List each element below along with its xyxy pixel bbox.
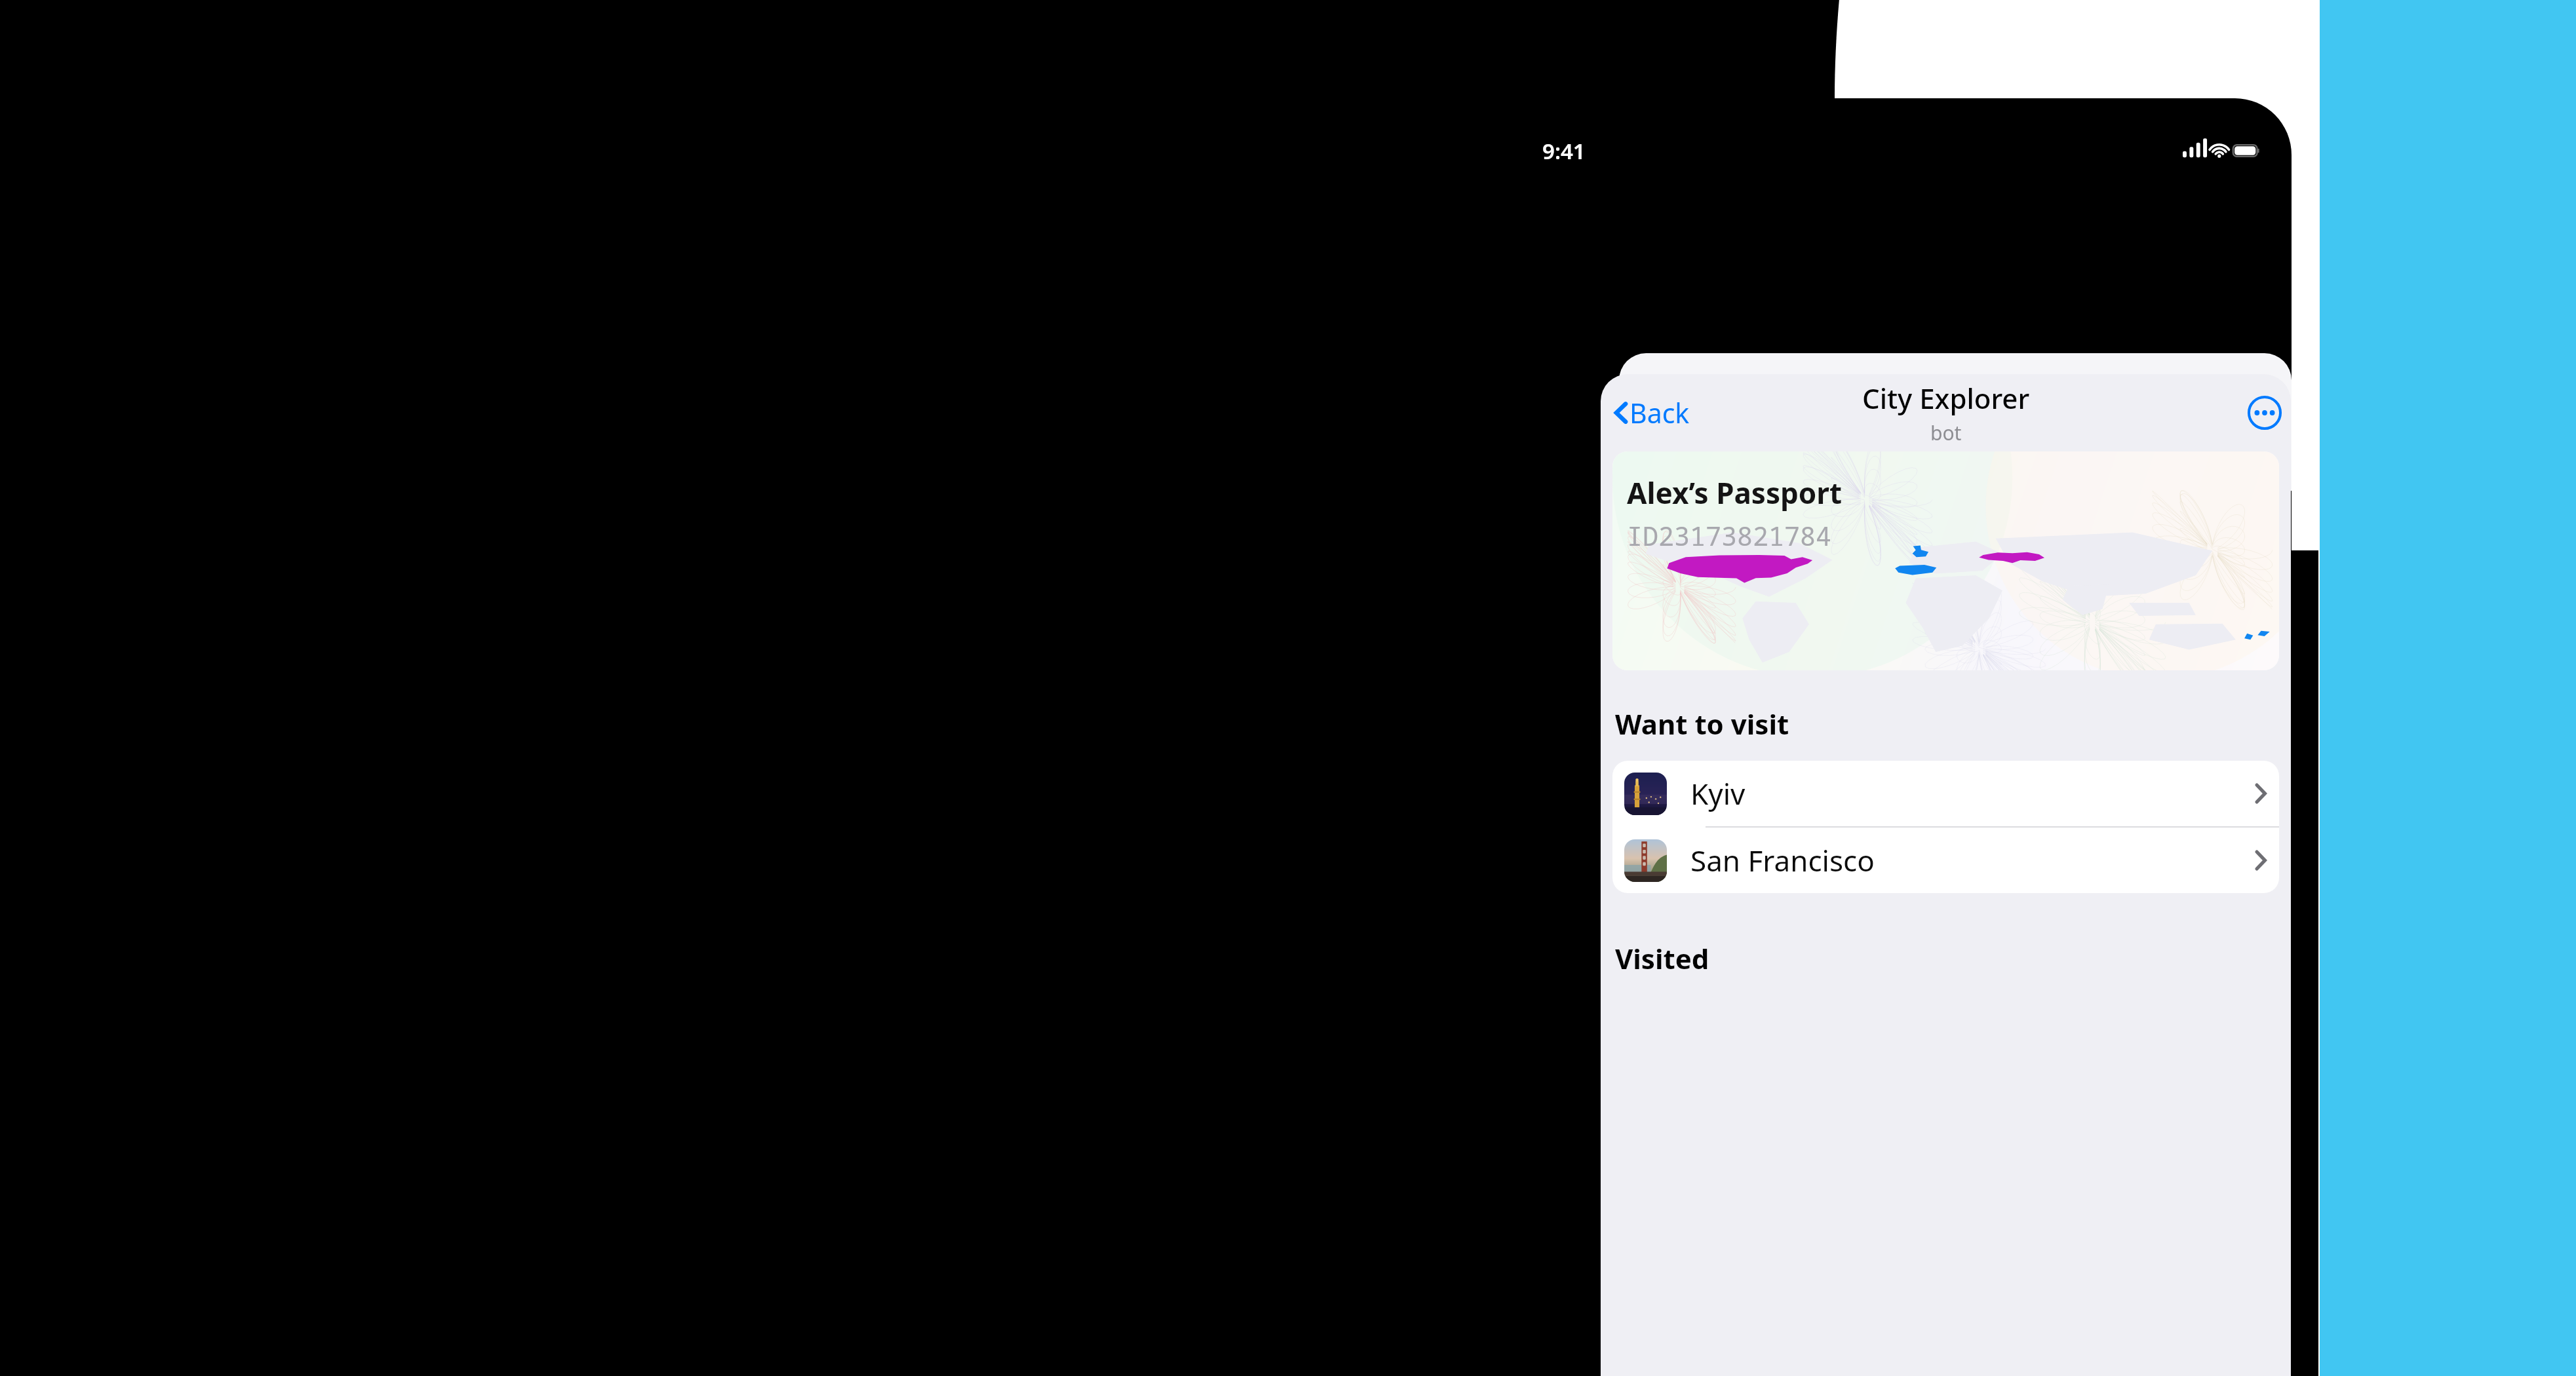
staticText: Back <box>1630 394 1690 431</box>
staticText: ID23173821784 <box>1627 518 1831 553</box>
button[interactable]: Kyiv <box>1612 761 2279 826</box>
staticText: Visited <box>1615 940 1709 977</box>
staticText: Alex’s Passport <box>1627 473 1843 512</box>
button[interactable]: San Francisco <box>1612 828 2279 893</box>
staticText: City Explorer <box>1862 379 2030 417</box>
button[interactable]: More options <box>2247 395 2282 430</box>
staticText: Want to visit <box>1615 705 1789 742</box>
staticText: bot <box>1930 419 1962 446</box>
button[interactable]: Alex’s Passport <box>1612 451 2279 670</box>
button[interactable]: Back <box>1610 389 1694 436</box>
staticText: San Francisco <box>1690 841 1875 880</box>
staticText: 9:41 <box>1542 136 1586 166</box>
staticText: Kyiv <box>1690 774 1746 813</box>
